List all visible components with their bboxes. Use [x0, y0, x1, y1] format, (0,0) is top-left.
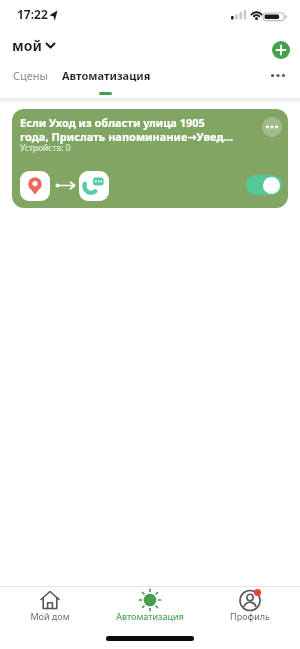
staticText: мой [12, 36, 42, 55]
button[interactable]: Автоматизация [62, 64, 151, 79]
staticText: Устройств: 0 [20, 142, 71, 154]
button[interactable]: мой [12, 35, 58, 55]
staticText: Профиль [210, 610, 290, 622]
button[interactable] [272, 41, 290, 59]
staticText: Мой дом [10, 610, 90, 622]
button[interactable] [262, 117, 282, 137]
staticText: Автоматизация [105, 610, 195, 622]
button[interactable] [246, 175, 282, 195]
button[interactable]: Мой дом [10, 588, 90, 624]
button[interactable]: Профиль [210, 588, 290, 624]
button[interactable]: Автоматизация [105, 588, 195, 624]
button[interactable] [268, 66, 292, 84]
button[interactable]: Если Уход из области улица 1905 года, Пр… [12, 109, 288, 208]
button[interactable]: Сцены [13, 68, 48, 83]
staticText: Если Уход из области улица 1905 года, Пр… [20, 115, 234, 144]
staticText: 17:22 [17, 6, 48, 22]
staticText: Автоматизация [62, 68, 151, 83]
